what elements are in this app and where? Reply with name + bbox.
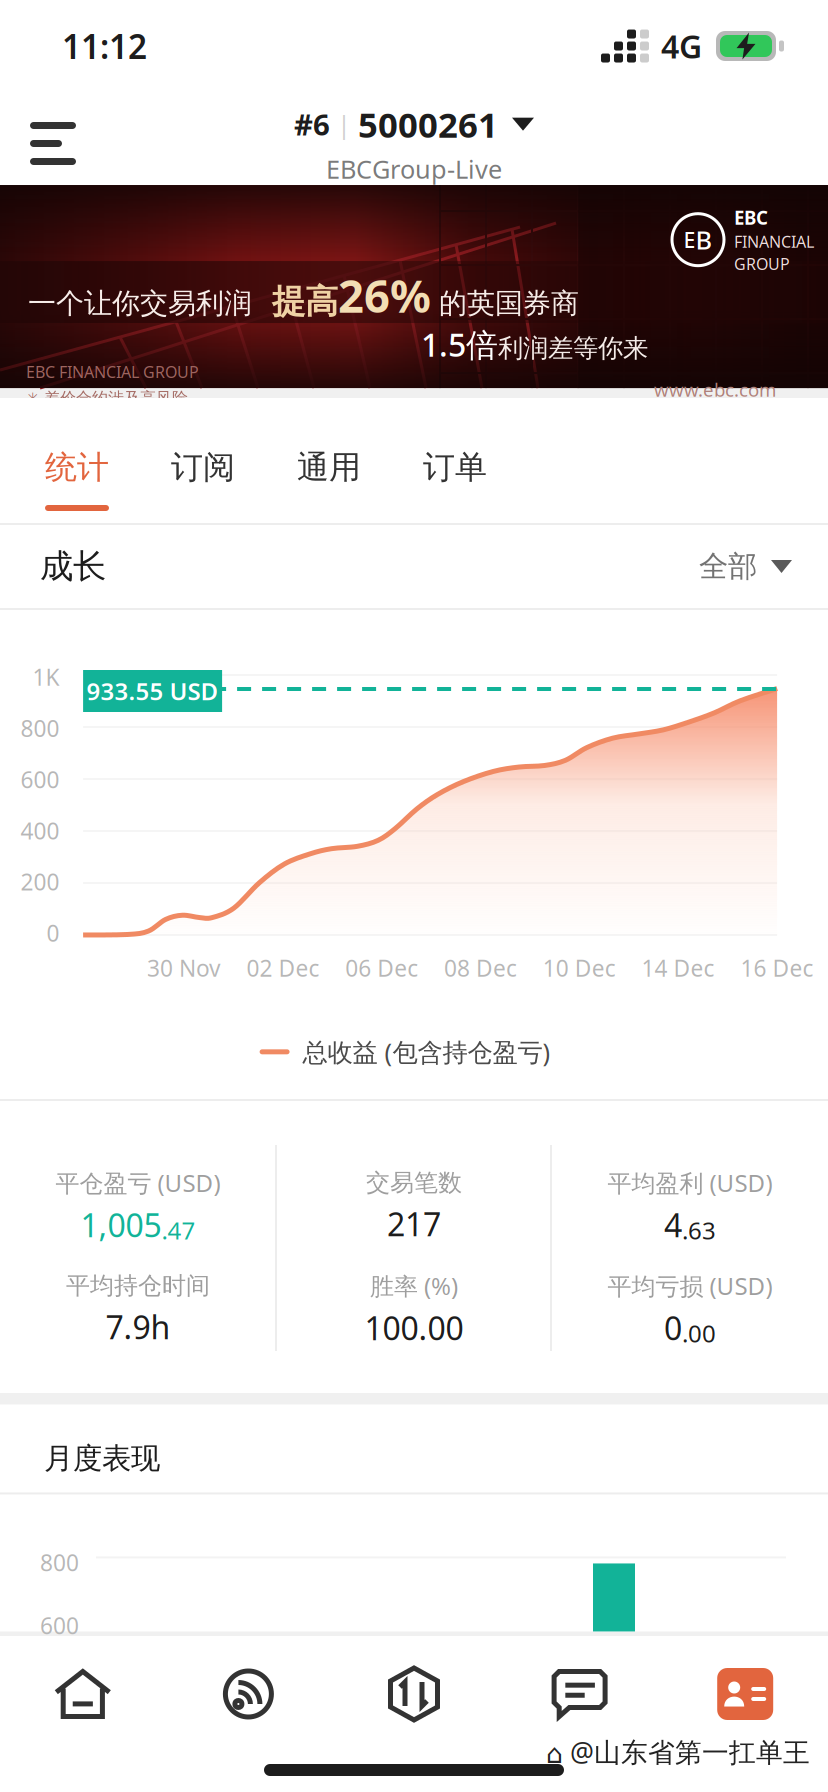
staticText: 200 (21, 867, 60, 897)
staticText: 217 (387, 1202, 441, 1245)
staticText: 26% (338, 265, 431, 325)
button[interactable]: 通用 (266, 398, 392, 523)
button[interactable]: Home (0, 1650, 166, 1738)
staticText: GROUP (734, 253, 790, 274)
staticText: 14 Dec (642, 953, 715, 983)
staticText: 全部 (699, 548, 757, 584)
staticText: 通用 (297, 448, 361, 487)
staticText: 平均盈利 (USD) (607, 1167, 772, 1199)
button[interactable]: 统计 (14, 398, 140, 523)
staticText: B (695, 223, 712, 256)
staticText: 平均亏损 (USD) (607, 1270, 772, 1302)
staticText: 11:12 (62, 24, 147, 68)
staticText: 的英国券商 (431, 286, 579, 321)
staticText: 统计 (45, 448, 109, 487)
staticText: 1K (33, 662, 60, 692)
staticText: 800 (21, 713, 60, 743)
staticText: 胜率 (%) (370, 1270, 458, 1302)
staticText: EBCGroup-Live (326, 152, 502, 186)
staticText: 0 (664, 1307, 682, 1349)
staticText: 4 (664, 1204, 682, 1246)
staticText: 1,005 (80, 1204, 161, 1246)
staticText: 订阅 (171, 448, 235, 487)
staticText: .47 (161, 1214, 195, 1246)
staticText: 08 Dec (444, 953, 517, 983)
staticText: 5000261 (358, 101, 498, 147)
staticText: 06 Dec (345, 953, 418, 983)
staticText: 600 (40, 1610, 79, 1640)
button[interactable]: Messages (497, 1650, 662, 1738)
staticText: www.ebc.com (654, 377, 776, 402)
staticText: 10 Dec (543, 953, 616, 983)
staticText: 平仓盈亏 (USD) (55, 1167, 220, 1199)
staticText: 提高 (252, 281, 338, 322)
staticText: 800 (40, 1547, 79, 1577)
button[interactable]: Profile (662, 1650, 828, 1738)
button[interactable]: Menu (0, 97, 134, 189)
button[interactable]: 订阅 (140, 398, 266, 523)
staticText: 月度表现 (44, 1440, 160, 1476)
staticText: 1.5倍 (421, 323, 498, 365)
staticText: 利润差等你来 (498, 333, 648, 364)
staticText: | (330, 107, 358, 141)
staticText: 600 (21, 764, 60, 794)
staticText: 4G (661, 25, 702, 67)
staticText: 02 Dec (246, 953, 319, 983)
button[interactable]: Trade (331, 1650, 497, 1738)
button[interactable]: 订单 (392, 398, 518, 523)
staticText: 一个让你交易利润 (28, 286, 252, 321)
staticText: EBC FINANCIAL GROUP (26, 361, 199, 382)
staticText: 成长 (40, 546, 106, 587)
staticText: E (683, 225, 695, 254)
staticText: ⌂ @山东省第一扛单王 (546, 1734, 810, 1769)
button[interactable]: Market (166, 1650, 331, 1738)
staticText: EBC (734, 205, 768, 230)
staticText: 30 Nov (147, 953, 221, 983)
staticText: 总收益 (包含持仓盈亏) (303, 1035, 551, 1069)
staticText: 400 (21, 815, 60, 846)
staticText: 交易笔数 (366, 1168, 462, 1197)
staticText: 0 (47, 918, 60, 948)
staticText: .00 (682, 1317, 716, 1349)
button[interactable]: #6 (204, 97, 624, 189)
staticText: .63 (682, 1214, 716, 1246)
staticText: 100.00 (364, 1307, 463, 1349)
button[interactable]: 全部 (699, 524, 792, 608)
staticText: 订单 (423, 448, 487, 487)
staticText: #6 (294, 105, 330, 144)
staticText: 933.55 USD (87, 675, 219, 707)
staticText: FINANCIAL (734, 231, 814, 252)
staticText: 平均持仓时间 (66, 1271, 210, 1300)
staticText: 16 Dec (740, 953, 813, 983)
staticText: ✳ 差价合约涉及高风险 (26, 388, 188, 408)
staticText: 7.9h (105, 1305, 170, 1348)
